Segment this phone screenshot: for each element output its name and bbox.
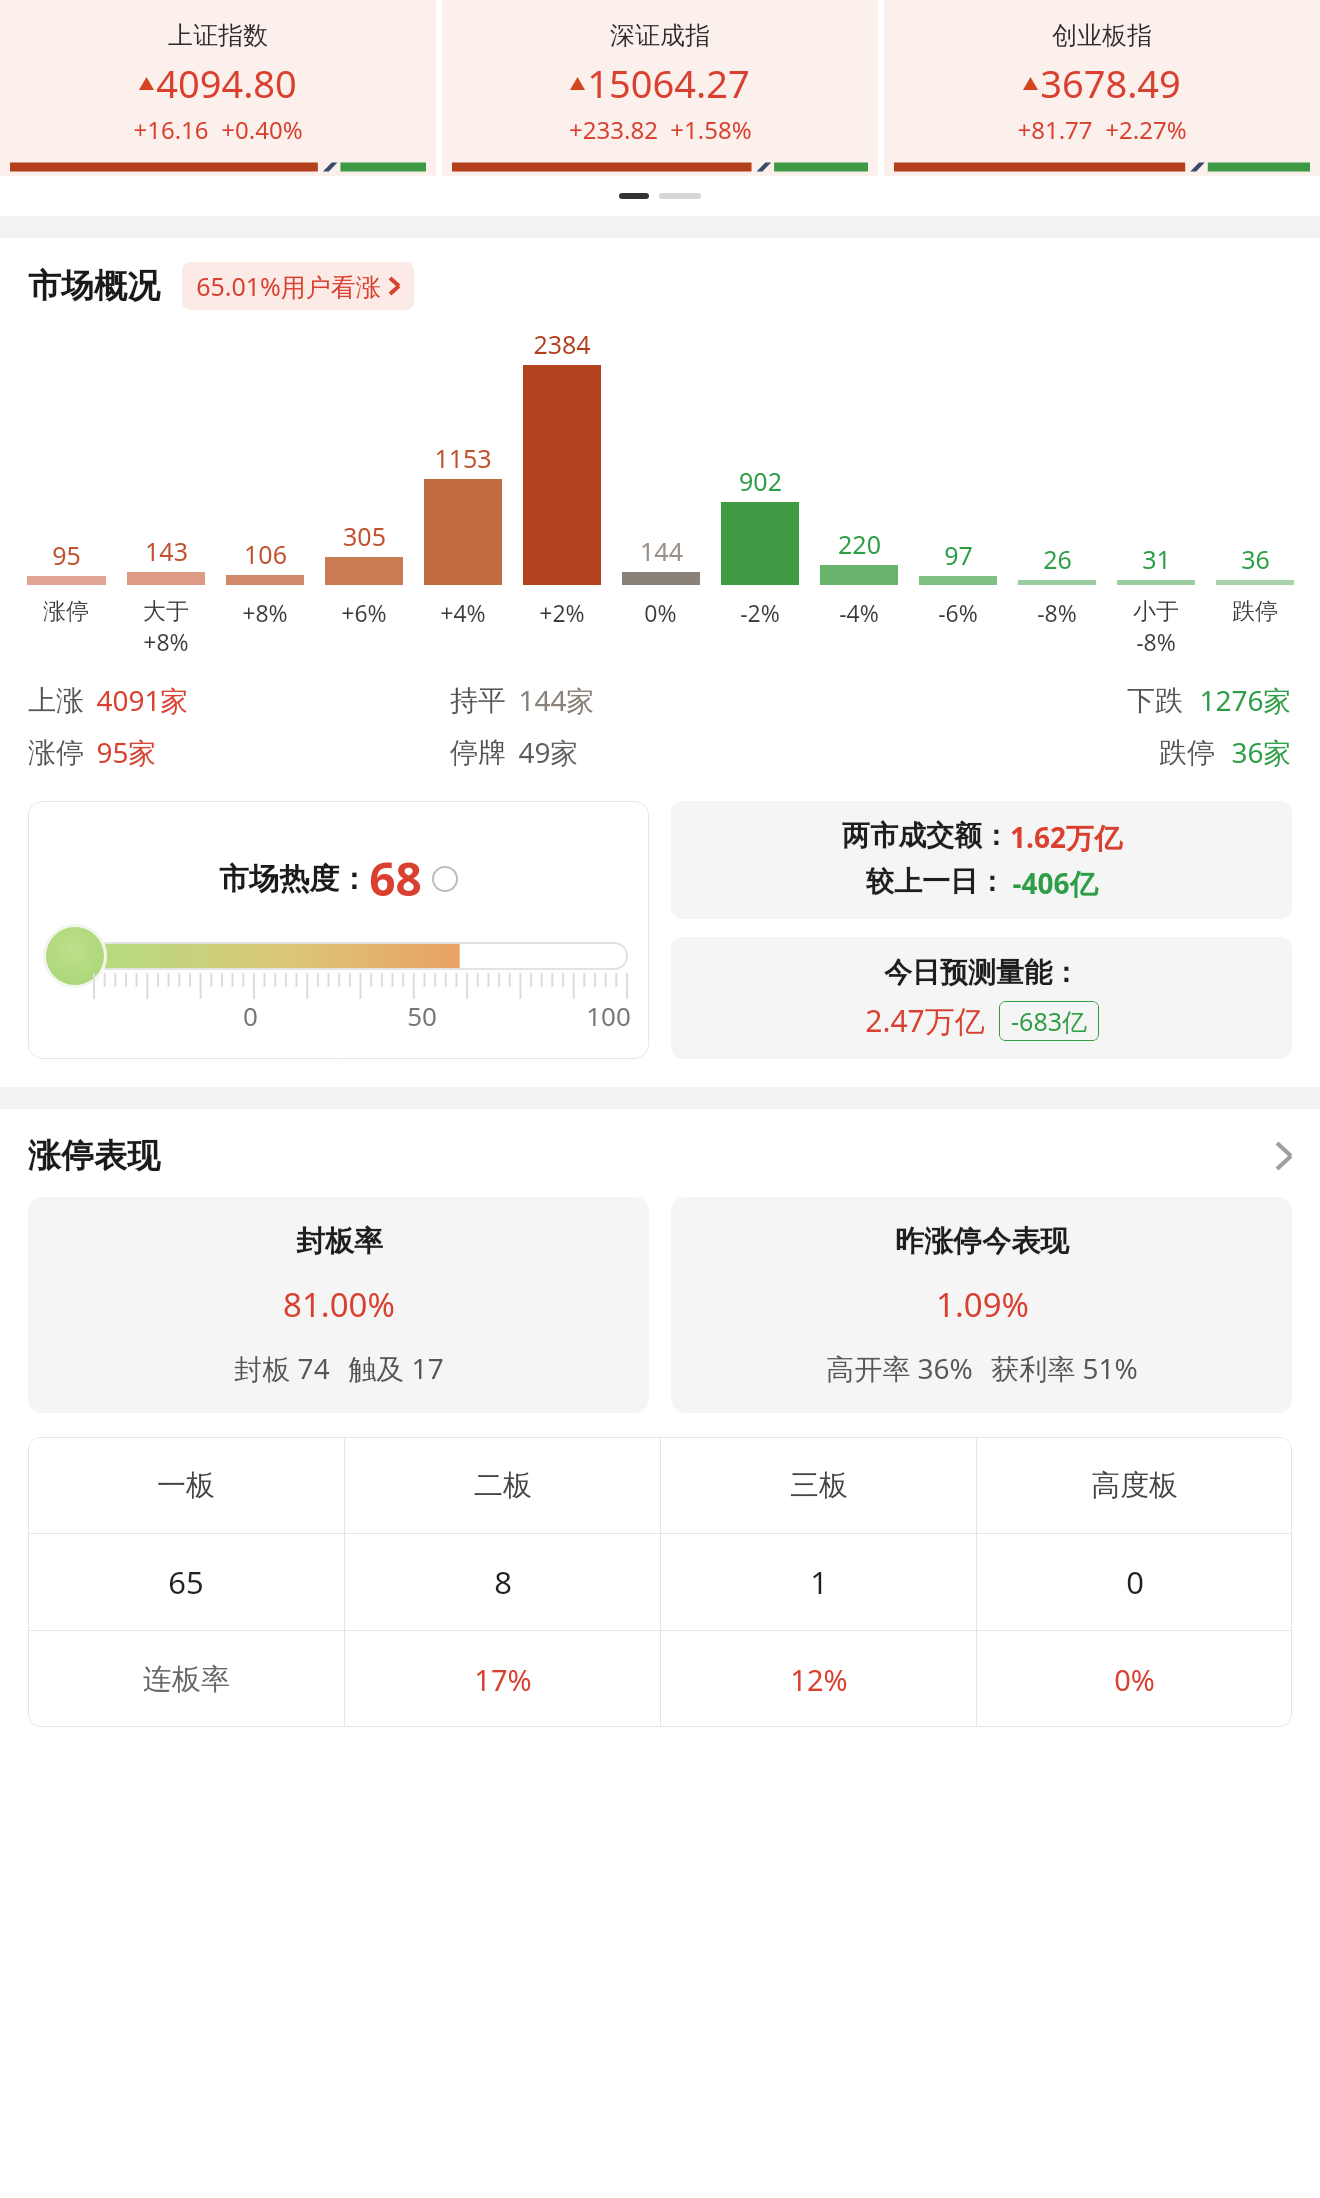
staticText: 17% bbox=[474, 1660, 532, 1699]
staticText: -4% bbox=[839, 597, 879, 628]
button[interactable]: 12% bbox=[661, 1631, 976, 1727]
staticText: 上涨 bbox=[28, 683, 84, 718]
staticText: 50 bbox=[407, 998, 437, 1033]
staticText: 0% bbox=[1114, 1660, 1155, 1699]
staticText: 高开率 36% bbox=[826, 1349, 973, 1387]
staticText: 今日预测量能： bbox=[884, 955, 1080, 990]
staticText: -406亿 bbox=[1012, 864, 1098, 902]
staticText: 跌停 bbox=[1232, 597, 1278, 626]
staticText: 涨停表现 bbox=[28, 1135, 160, 1177]
button[interactable]: 二板 bbox=[345, 1437, 660, 1533]
staticText: 100 bbox=[586, 998, 631, 1033]
staticText: 26 bbox=[1043, 542, 1072, 576]
staticText: 涨停 bbox=[43, 597, 89, 626]
staticText: +0.40% bbox=[221, 113, 303, 146]
staticText: 305 bbox=[343, 519, 386, 553]
staticText: +2.27% bbox=[1105, 113, 1187, 146]
staticText: +8% bbox=[242, 597, 288, 628]
staticText: 12% bbox=[790, 1660, 848, 1699]
button[interactable]: 0% bbox=[977, 1631, 1292, 1727]
staticText: 902 bbox=[739, 464, 782, 498]
staticText: 1 bbox=[810, 1561, 828, 1603]
staticText: 三板 bbox=[790, 1467, 848, 1504]
button[interactable]: 连板率 bbox=[28, 1631, 344, 1727]
staticText: 4091家 bbox=[96, 681, 189, 719]
staticText: 106 bbox=[244, 537, 287, 571]
button[interactable]: 昨涨停今表现 bbox=[671, 1197, 1292, 1413]
button[interactable]: 市场热度： bbox=[28, 801, 649, 1059]
staticText: +8% bbox=[143, 626, 189, 657]
staticText: 1.62万亿 bbox=[1010, 818, 1122, 856]
staticText: 封板率 bbox=[296, 1223, 383, 1260]
staticText: 连板率 bbox=[143, 1661, 230, 1698]
staticText: +2% bbox=[539, 597, 585, 628]
staticText: 触及 17 bbox=[348, 1349, 444, 1387]
staticText: 15064.27 bbox=[587, 57, 750, 109]
staticText: 95家 bbox=[96, 733, 157, 771]
staticText: 下跌 bbox=[1127, 683, 1183, 718]
staticText: 144家 bbox=[518, 681, 595, 719]
staticText: +1.58% bbox=[670, 113, 752, 146]
staticText: +4% bbox=[440, 597, 486, 628]
staticText: 49家 bbox=[518, 733, 579, 771]
staticText: 跌停 bbox=[1159, 735, 1215, 770]
staticText: 封板 74 bbox=[234, 1349, 330, 1387]
staticText: 4094.80 bbox=[156, 57, 297, 109]
button[interactable]: 三板 bbox=[661, 1437, 976, 1533]
staticText: 0 bbox=[1126, 1561, 1144, 1603]
staticText: +233.82 bbox=[569, 113, 658, 146]
button[interactable]: 两市成交额： bbox=[671, 801, 1292, 919]
button[interactable]: 17% bbox=[345, 1631, 660, 1727]
staticText: 81.00% bbox=[283, 1282, 395, 1327]
staticText: 2384 bbox=[533, 327, 591, 361]
button[interactable]: 0 bbox=[977, 1534, 1292, 1630]
button[interactable]: 创业板指 bbox=[884, 0, 1320, 176]
button[interactable]: 上证指数 bbox=[0, 0, 436, 176]
staticText: +16.16 bbox=[133, 113, 209, 146]
staticText: 65.01%用户看涨 bbox=[196, 269, 381, 303]
staticText: 昨涨停今表现 bbox=[895, 1223, 1069, 1260]
staticText: 0% bbox=[644, 597, 677, 628]
staticText: 较上一日： bbox=[866, 864, 1006, 899]
button[interactable]: 1 bbox=[661, 1534, 976, 1630]
staticText: 143 bbox=[145, 534, 188, 568]
staticText: 144 bbox=[640, 534, 683, 568]
other: 说明 bbox=[432, 866, 458, 892]
staticText: 创业板指 bbox=[1052, 20, 1152, 51]
staticText: 1276家 bbox=[1199, 681, 1292, 719]
button[interactable]: 65 bbox=[28, 1534, 344, 1630]
staticText: 65 bbox=[168, 1561, 204, 1603]
staticText: 市场概况 bbox=[28, 265, 160, 307]
staticText: 市场热度： bbox=[219, 860, 369, 898]
staticText: 36 bbox=[1241, 542, 1270, 576]
staticText: +81.77 bbox=[1017, 113, 1093, 146]
staticText: 8 bbox=[494, 1561, 512, 1603]
staticText: -2% bbox=[740, 597, 780, 628]
button[interactable]: 高度板 bbox=[977, 1437, 1292, 1533]
staticText: 3678.49 bbox=[1040, 57, 1181, 109]
button[interactable]: 涨停表现 bbox=[0, 1109, 1320, 1197]
staticText: 1153 bbox=[434, 441, 492, 475]
staticText: -683亿 bbox=[1011, 1004, 1087, 1038]
staticText: 2.47万亿 bbox=[865, 1000, 985, 1041]
staticText: 97 bbox=[944, 538, 973, 572]
button[interactable]: 8 bbox=[345, 1534, 660, 1630]
staticText: 小于 bbox=[1133, 597, 1179, 626]
button[interactable]: 今日预测量能： bbox=[671, 937, 1292, 1059]
button[interactable]: 封板率 bbox=[28, 1197, 649, 1413]
staticText: 68 bbox=[369, 847, 422, 910]
button[interactable]: 一板 bbox=[28, 1437, 344, 1533]
staticText: -8% bbox=[1136, 626, 1176, 657]
staticText: 停牌 bbox=[450, 735, 506, 770]
staticText: 持平 bbox=[450, 683, 506, 718]
staticText: 二板 bbox=[474, 1467, 532, 1504]
staticText: 36家 bbox=[1231, 733, 1292, 771]
staticText: 涨停 bbox=[28, 735, 84, 770]
staticText: -8% bbox=[1037, 597, 1077, 628]
staticText: +6% bbox=[341, 597, 387, 628]
staticText: 两市成交额： bbox=[842, 818, 1010, 853]
staticText: 31 bbox=[1142, 542, 1171, 576]
button[interactable]: 深证成指 bbox=[442, 0, 878, 176]
staticText: 一板 bbox=[157, 1467, 215, 1504]
button[interactable]: 65.01%用户看涨 bbox=[182, 262, 414, 310]
